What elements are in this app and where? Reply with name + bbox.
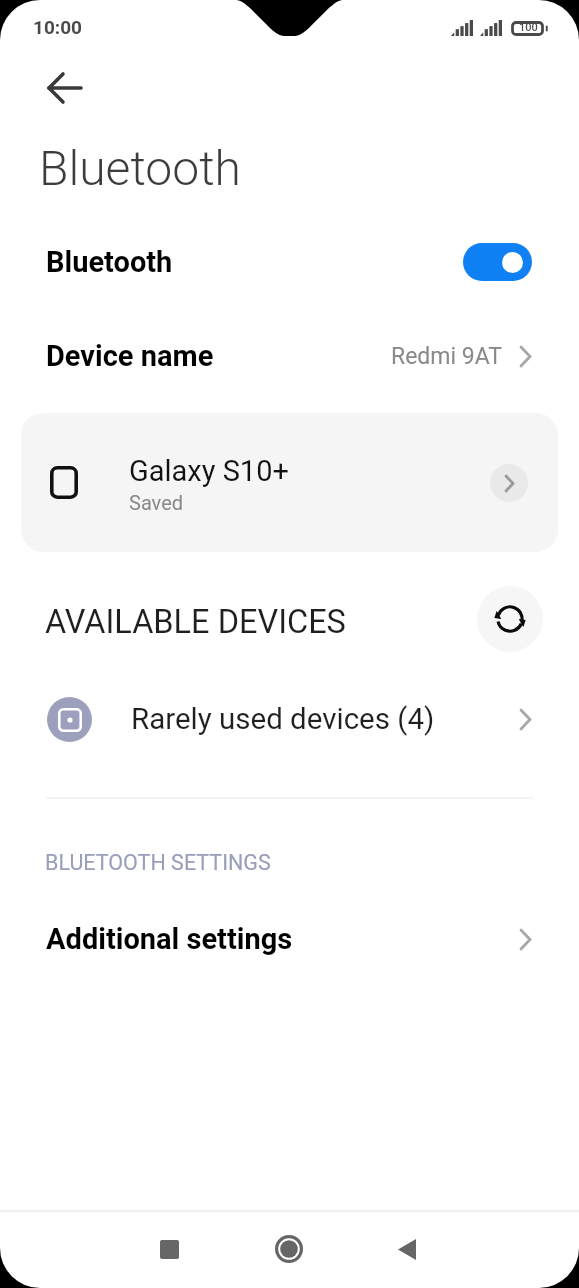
button[interactable]: Rarely used devices (4) (0, 675, 579, 763)
staticText: Bluetooth (39, 140, 241, 196)
button[interactable]: Galaxy S10+ (21, 413, 558, 552)
staticText: AVAILABLE DEVICES (45, 603, 346, 641)
staticText: Galaxy S10+ (129, 454, 289, 488)
staticText: Device name (46, 339, 214, 373)
button[interactable]: Back (367, 1219, 447, 1279)
staticText: 10:00 (33, 16, 82, 38)
staticText: BLUETOOTH SETTINGS (45, 850, 271, 875)
staticText: Rarely used devices (4) (131, 702, 435, 737)
staticText: Additional settings (46, 922, 293, 956)
staticText: 100 (519, 21, 538, 34)
staticText: Saved (129, 491, 184, 514)
button[interactable]: Bluetooth (0, 224, 579, 300)
button[interactable]: Device details (490, 464, 528, 502)
staticText: Redmi 9AT (391, 343, 503, 370)
button[interactable]: Refresh (477, 586, 543, 652)
staticText: Bluetooth (46, 245, 173, 279)
button[interactable]: Recent apps (129, 1219, 209, 1279)
button[interactable]: Back (36, 60, 92, 116)
button[interactable]: Device name (0, 318, 579, 394)
button[interactable]: Home (249, 1219, 329, 1279)
button[interactable]: Additional settings (0, 899, 579, 979)
